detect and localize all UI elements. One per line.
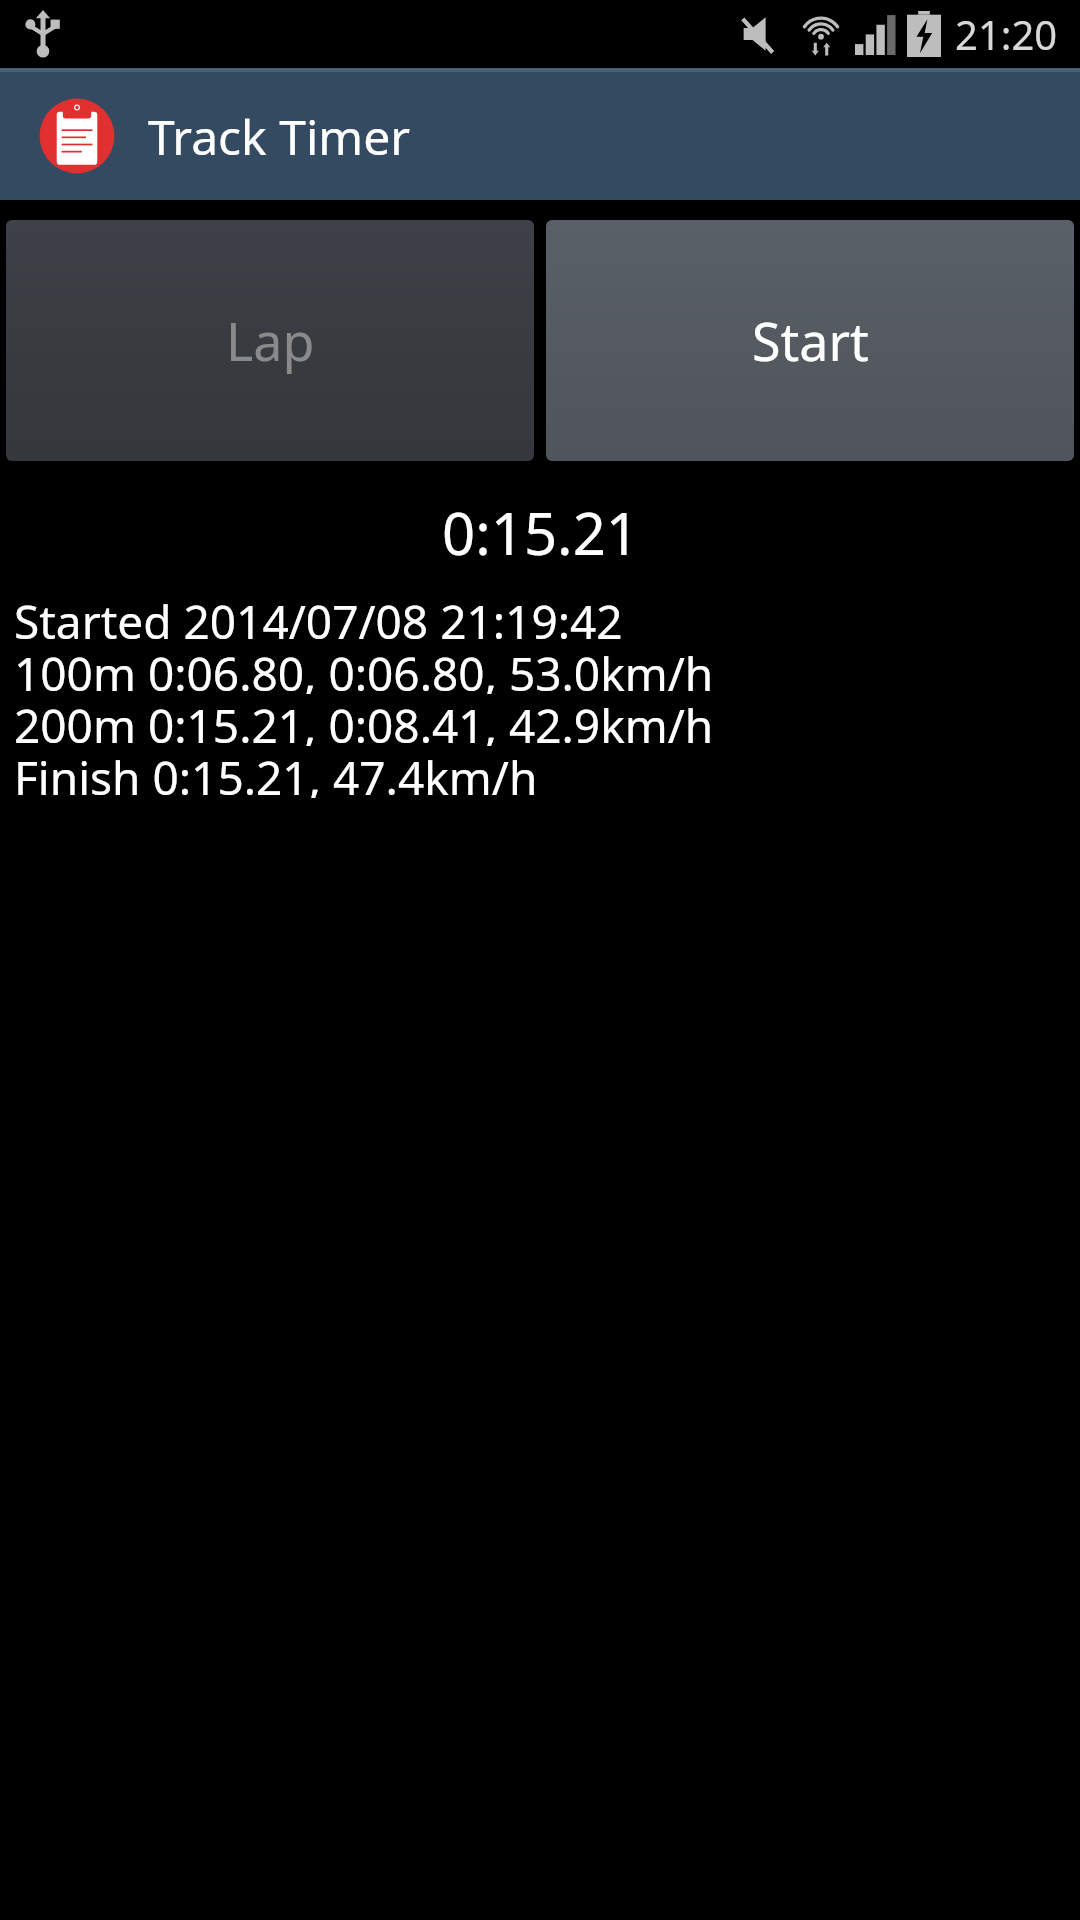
staticText: 100m 0:06.80, 0:06.80, 53.0km/h — [14, 642, 714, 694]
staticText: Start — [752, 305, 869, 376]
staticText: Track Timer — [148, 104, 411, 169]
staticText: Finish 0:15.21, 47.4km/h — [14, 746, 538, 798]
button[interactable]: Lap — [6, 220, 534, 461]
staticText: 21:20 — [955, 7, 1058, 61]
staticText: 0:15.21 — [442, 493, 639, 572]
button[interactable]: Start — [546, 220, 1074, 461]
staticText: 200m 0:15.21, 0:08.41, 42.9km/h — [14, 694, 714, 746]
staticText: Lap — [226, 305, 315, 376]
staticText: Started 2014/07/08 21:19:42 — [14, 590, 623, 642]
